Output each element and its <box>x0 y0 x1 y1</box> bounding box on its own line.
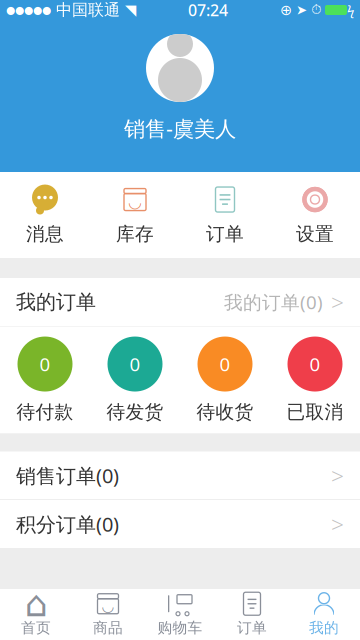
staticText: 待付款 <box>16 400 73 423</box>
staticText: 积分订单(0) <box>16 511 119 537</box>
staticText: 0 <box>309 352 320 376</box>
staticText: 我的订单(0) <box>224 290 323 314</box>
button[interactable]: ⌂ <box>0 589 72 640</box>
staticText: ⌂ <box>24 583 47 624</box>
staticText: 待收货 <box>196 400 253 423</box>
button[interactable]: 积分订单(0) <box>0 500 360 548</box>
staticText: 商品 <box>93 619 123 637</box>
staticText: 待发货 <box>106 400 163 423</box>
staticText: > <box>331 460 344 490</box>
button[interactable]: 我的订单 <box>0 278 360 326</box>
staticText: 我的 <box>309 619 339 637</box>
button[interactable]: 0 <box>270 330 360 430</box>
staticText: ⏱ <box>311 3 321 16</box>
staticText: ◥ <box>125 2 136 18</box>
staticText: ◡ <box>128 193 142 211</box>
button[interactable]: 订单 <box>180 174 270 256</box>
staticText: 我的订单 <box>16 290 96 314</box>
staticText: ⊕ <box>280 2 292 18</box>
staticText: 订单 <box>206 222 244 245</box>
button[interactable]: 订单 <box>216 589 288 640</box>
staticText: 销售-虞美人 <box>124 114 236 142</box>
staticText: > <box>331 509 344 539</box>
staticText: ◡ <box>101 598 114 614</box>
staticText: 首页 <box>21 619 51 637</box>
staticText: ϟ <box>347 1 354 19</box>
staticText: 已取消 <box>286 400 343 423</box>
button[interactable]: 购物车 <box>144 589 216 640</box>
button[interactable]: 设置 <box>270 174 360 256</box>
staticText: 订单 <box>237 619 267 637</box>
button[interactable]: ◡ <box>72 589 144 640</box>
button[interactable]: 销售订单(0) <box>0 451 360 499</box>
staticText: 库存 <box>116 222 154 245</box>
button[interactable]: 0 <box>180 330 270 430</box>
staticText: 消息 <box>26 222 64 245</box>
staticText: 中国联通 <box>51 0 125 20</box>
button[interactable]: 消息 <box>0 174 90 256</box>
staticText: ●●●●● <box>6 4 51 16</box>
staticText: 0 <box>39 352 50 376</box>
staticText: 07:24 <box>188 0 228 21</box>
staticText: 销售订单(0) <box>16 462 119 489</box>
button[interactable]: 0 <box>0 330 90 430</box>
staticText: 设置 <box>296 222 334 245</box>
button[interactable]: 0 <box>90 330 180 430</box>
staticText: 0 <box>129 352 140 376</box>
button[interactable]: 我的 <box>288 589 360 640</box>
button[interactable]: ◡ <box>90 174 180 256</box>
staticText: > <box>331 287 344 317</box>
staticText: 0 <box>219 352 230 376</box>
staticText: 购物车 <box>157 619 202 637</box>
staticText: ➤ <box>292 2 311 17</box>
